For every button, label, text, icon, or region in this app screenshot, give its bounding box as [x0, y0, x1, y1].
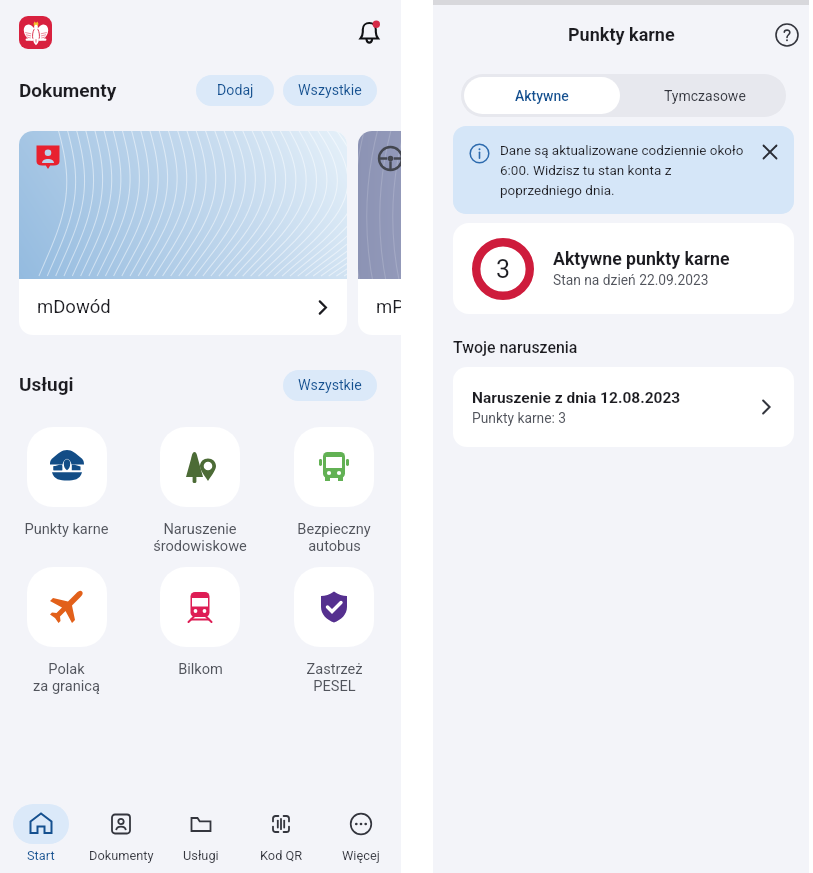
button[interactable]: Aktywne	[464, 77, 620, 114]
staticText: Punkty karne	[24, 520, 109, 537]
staticText: Aktywne punkty karne	[553, 249, 730, 270]
staticText: Kod QR	[260, 848, 303, 863]
staticText: Zastrzeż	[306, 660, 363, 677]
button[interactable]: Bezpieczny	[267, 427, 401, 554]
button[interactable]: mDowód	[19, 131, 347, 335]
staticText: 3	[496, 255, 511, 284]
staticText: Punkty karne: 3	[472, 410, 567, 426]
staticText: Usługi	[19, 373, 74, 395]
button[interactable]: Naruszenie z dnia 12.08.2023	[453, 367, 794, 447]
staticText: Dokumenty	[89, 848, 154, 863]
staticText: Start	[27, 848, 55, 863]
staticText: Twoje naruszenia	[453, 338, 578, 357]
button[interactable]: Dodaj	[196, 75, 274, 106]
staticText: środowiskowe	[153, 537, 247, 554]
staticText: za granicą	[33, 677, 100, 694]
staticText: mDowód	[37, 296, 111, 318]
staticText: Naruszenie z dnia 12.08.2023	[472, 389, 681, 407]
button[interactable]: Usługi	[161, 793, 241, 873]
staticText: mPrawo jazdy	[376, 296, 401, 318]
staticText: Stan na dzień 22.09.2023	[553, 272, 709, 288]
staticText: Tymczasowe	[664, 88, 746, 104]
staticText: Dodaj	[217, 82, 254, 99]
button[interactable]: Naruszenie	[133, 427, 267, 554]
button[interactable]: Więcej	[321, 793, 401, 873]
button[interactable]: mPrawo jazdy	[358, 131, 401, 335]
staticText: Dane są aktualizowane codziennie około 6…	[500, 142, 745, 198]
staticText: Usługi	[183, 848, 219, 863]
staticText: Dokumenty	[19, 79, 117, 101]
staticText: Aktywne	[515, 88, 569, 104]
staticText: PESEL	[313, 677, 356, 694]
staticText: Naruszenie	[163, 520, 237, 537]
button[interactable]: Tymczasowe	[623, 74, 786, 117]
button[interactable]: Powiadomienia	[349, 12, 389, 52]
button[interactable]: Zamknij	[760, 142, 780, 162]
button[interactable]: Polak	[0, 567, 133, 694]
staticText: Punkty karne	[568, 24, 675, 45]
staticText: Polak	[48, 660, 85, 677]
staticText: autobus	[308, 537, 361, 554]
button[interactable]: Punkty karne	[0, 427, 133, 537]
button[interactable]: Zastrzeż	[267, 567, 401, 694]
button[interactable]: Wszystkie	[283, 370, 377, 401]
button[interactable]: Start	[0, 793, 81, 873]
button[interactable]: Kod QR	[241, 793, 321, 873]
staticText: Bezpieczny	[297, 520, 371, 537]
staticText: Wszystkie	[298, 82, 362, 99]
staticText: Więcej	[342, 848, 380, 863]
staticText: Wszystkie	[298, 377, 362, 394]
button[interactable]: Dokumenty	[81, 793, 161, 873]
staticText: Bilkom	[178, 660, 223, 677]
button[interactable]: 3	[453, 223, 794, 314]
button[interactable]: Bilkom	[133, 567, 267, 677]
button[interactable]: Pomoc	[773, 21, 801, 49]
button[interactable]: Wszystkie	[283, 75, 377, 106]
button[interactable]: Godło Polski	[19, 16, 52, 49]
